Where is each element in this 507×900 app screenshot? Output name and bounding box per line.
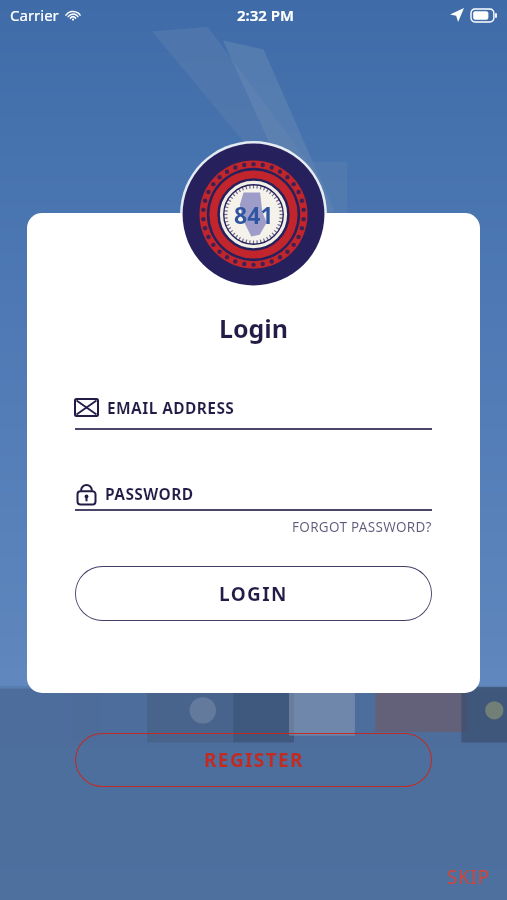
button[interactable]: FORGOT PASSWORD?: [292, 518, 432, 536]
button[interactable]: PASSWORD: [75, 482, 432, 511]
staticText: LOGIN: [219, 581, 288, 607]
button[interactable]: REGISTER: [75, 733, 432, 787]
staticText: REGISTER: [204, 747, 304, 773]
staticText: Carrier: [10, 5, 59, 25]
staticText: SKIP: [447, 864, 490, 890]
staticText: Login: [27, 311, 480, 345]
staticText: FORGOT PASSWORD?: [292, 518, 432, 536]
button[interactable]: LOGIN: [75, 566, 432, 621]
button[interactable]: EMAIL ADDRESS: [75, 397, 432, 430]
staticText: 841: [234, 199, 274, 230]
other: JULIE 811 logo: [180, 141, 327, 288]
staticText: 2:32 PM: [237, 5, 294, 25]
button[interactable]: SKIP: [441, 858, 496, 896]
staticText: PASSWORD: [105, 483, 194, 504]
staticText: EMAIL ADDRESS: [107, 397, 235, 418]
